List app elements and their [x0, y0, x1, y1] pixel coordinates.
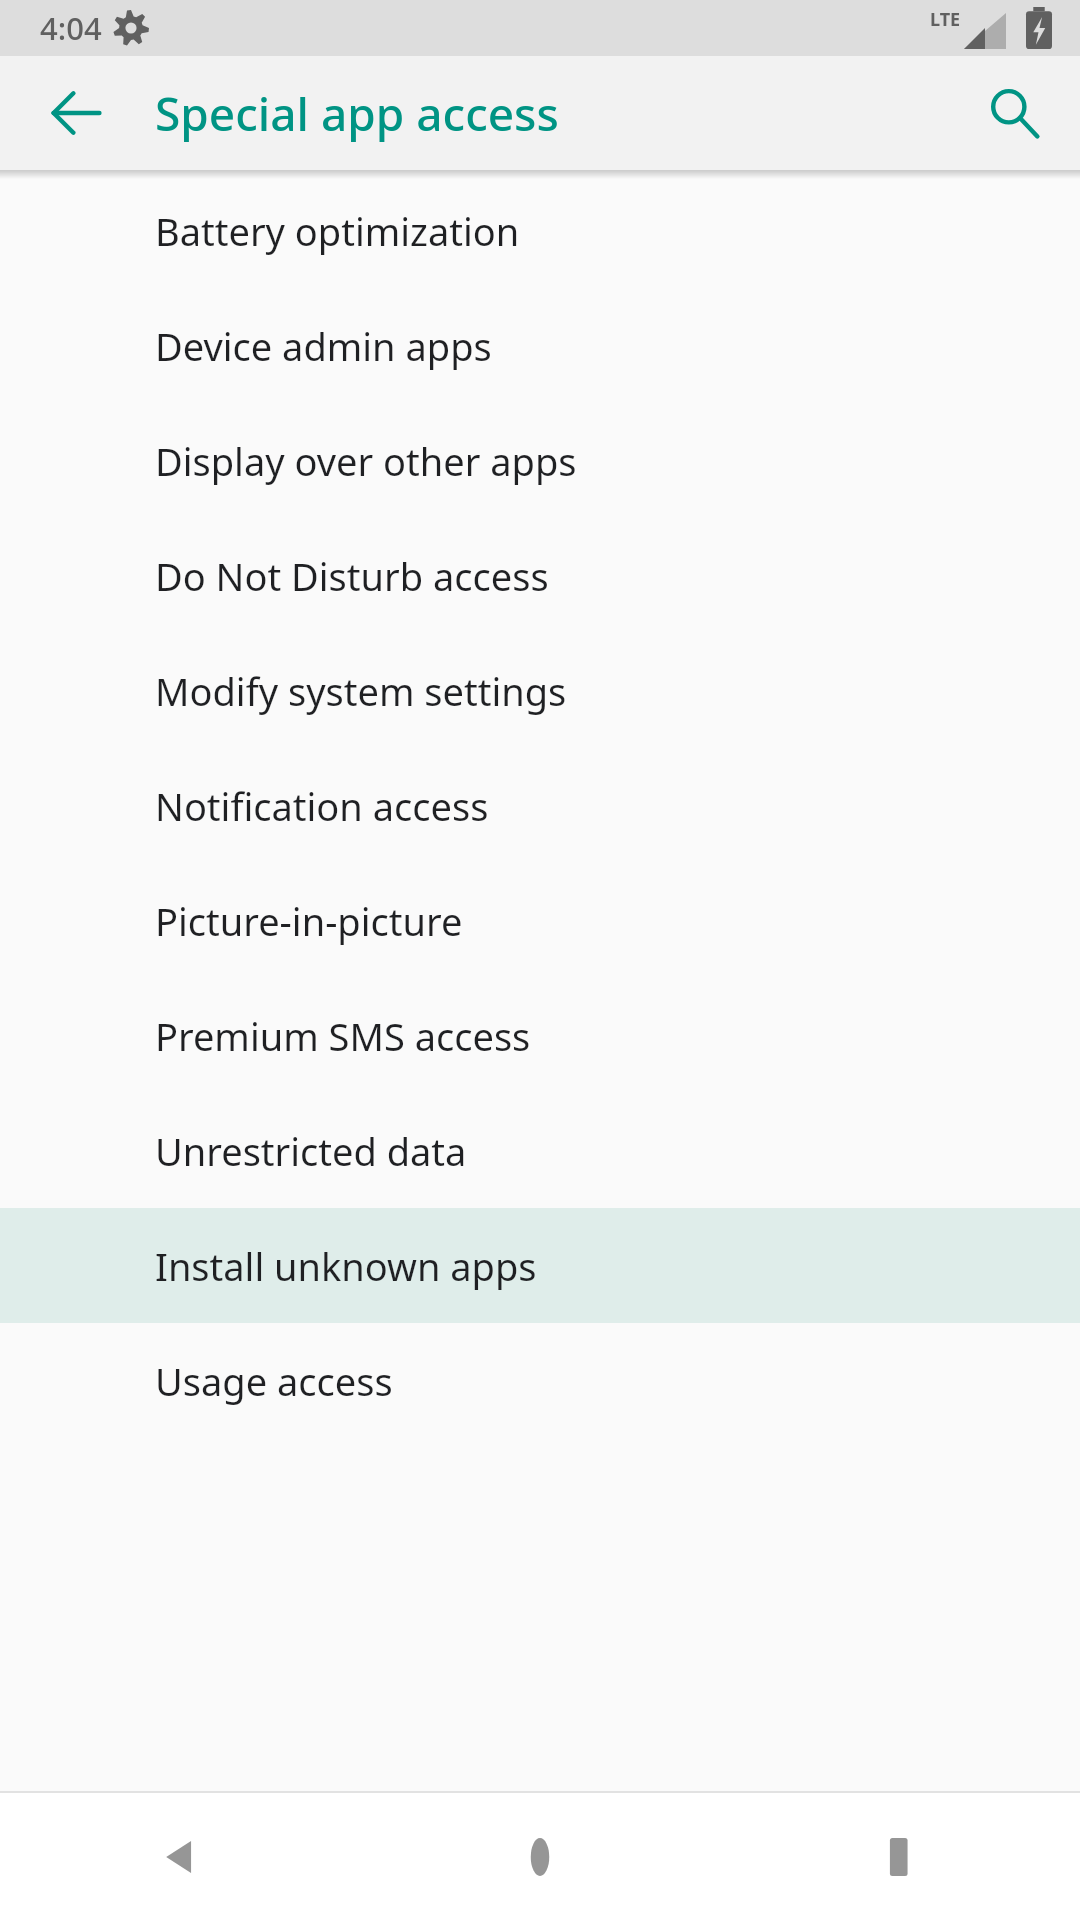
button[interactable]: Navigate up	[28, 65, 124, 161]
staticText: Battery optimization	[155, 205, 520, 257]
button[interactable]: Modify system settings	[0, 633, 1080, 748]
staticText: LTE	[930, 7, 961, 32]
button[interactable]: Install unknown apps	[0, 1208, 1080, 1323]
staticText: Picture-in-picture	[155, 895, 463, 947]
staticText: Do Not Disturb access	[155, 550, 549, 602]
button[interactable]: Display over other apps	[0, 403, 1080, 518]
staticText: Modify system settings	[155, 665, 567, 717]
button[interactable]: Premium SMS access	[0, 978, 1080, 1093]
button[interactable]: Battery optimization	[0, 173, 1080, 288]
staticText: Display over other apps	[155, 435, 577, 487]
staticText: Usage access	[155, 1355, 393, 1407]
button[interactable]: Device admin apps	[0, 288, 1080, 403]
button[interactable]: Recent apps	[720, 1793, 1080, 1920]
button[interactable]: Search	[966, 65, 1062, 161]
staticText: Unrestricted data	[155, 1125, 467, 1177]
button[interactable]: Unrestricted data	[0, 1093, 1080, 1208]
button[interactable]: Do Not Disturb access	[0, 518, 1080, 633]
button[interactable]: Back	[0, 1793, 360, 1920]
button[interactable]: Picture-in-picture	[0, 863, 1080, 978]
staticText: Notification access	[155, 780, 489, 832]
staticText: Premium SMS access	[155, 1010, 531, 1062]
staticText: Special app access	[155, 82, 559, 145]
button[interactable]: Home	[360, 1793, 720, 1920]
staticText: Device admin apps	[155, 320, 492, 372]
button[interactable]: Usage access	[0, 1323, 1080, 1438]
staticText: Install unknown apps	[155, 1240, 537, 1292]
staticText: 4:04	[40, 7, 102, 49]
button[interactable]: Notification access	[0, 748, 1080, 863]
